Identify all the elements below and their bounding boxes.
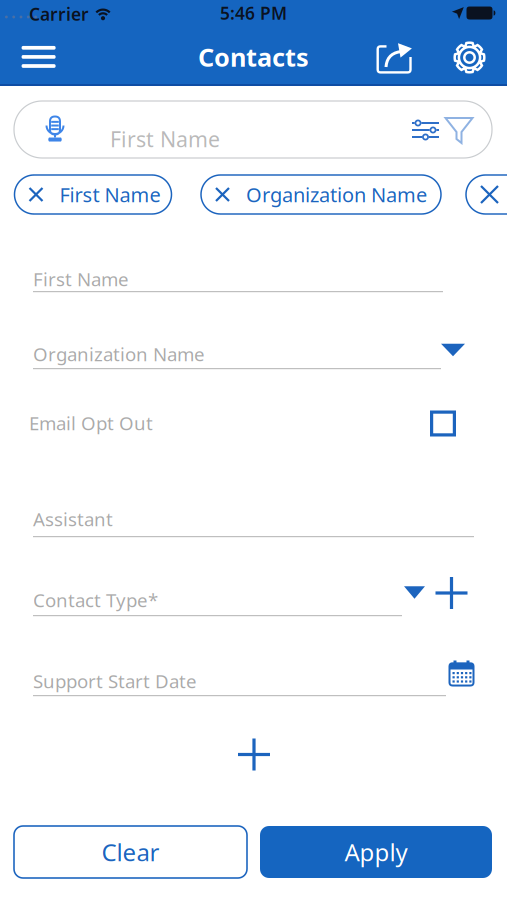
staticText: Organization Name <box>33 342 205 366</box>
staticText: Support Start Date <box>33 669 197 693</box>
staticText: Apply <box>344 836 407 868</box>
staticText: First Name <box>33 267 129 291</box>
button[interactable]: Contact Type* text field <box>33 587 402 616</box>
staticText: Assistant <box>33 507 113 531</box>
button[interactable]: Add contact type <box>431 573 471 613</box>
button[interactable]: Filter <box>442 113 476 147</box>
button[interactable]: Open dropdown <box>401 583 428 602</box>
button[interactable]: Menu <box>17 37 61 77</box>
button[interactable]: Search by First Name <box>14 101 492 158</box>
button[interactable]: Organization Name text field <box>33 341 441 369</box>
staticText: First Name <box>59 181 160 208</box>
button[interactable]: Settings <box>447 37 491 77</box>
staticText: 5:46 PM <box>220 1 287 24</box>
staticText: Organization Name <box>246 181 427 208</box>
staticText: Carrier <box>29 2 89 25</box>
staticText: First Name <box>110 125 220 153</box>
staticText: Email Opt Out <box>29 411 153 435</box>
staticText: Contact Type* <box>33 588 158 612</box>
button[interactable]: Remove First Name filter <box>14 175 171 214</box>
button[interactable]: Clear <box>14 826 247 878</box>
button[interactable]: Pick date <box>445 657 477 689</box>
button[interactable]: Assistant text field <box>33 506 474 537</box>
button[interactable]: Add field <box>232 732 276 776</box>
button[interactable]: Open dropdown <box>438 341 468 359</box>
button[interactable]: First Name text field <box>33 266 443 292</box>
button[interactable]: Apply <box>260 826 492 878</box>
staticText: Clear <box>101 836 159 868</box>
button[interactable]: Support Start Date text field <box>33 668 446 696</box>
button[interactable]: Voice search <box>38 111 72 149</box>
button[interactable]: Email Opt Out checkbox <box>426 406 460 440</box>
staticText: Contacts <box>198 40 309 74</box>
button[interactable]: Remove filter <box>466 175 507 214</box>
button[interactable]: Remove Organization Name filter <box>201 175 441 214</box>
button[interactable]: Share <box>372 38 416 78</box>
button[interactable]: Filter settings <box>409 115 443 145</box>
